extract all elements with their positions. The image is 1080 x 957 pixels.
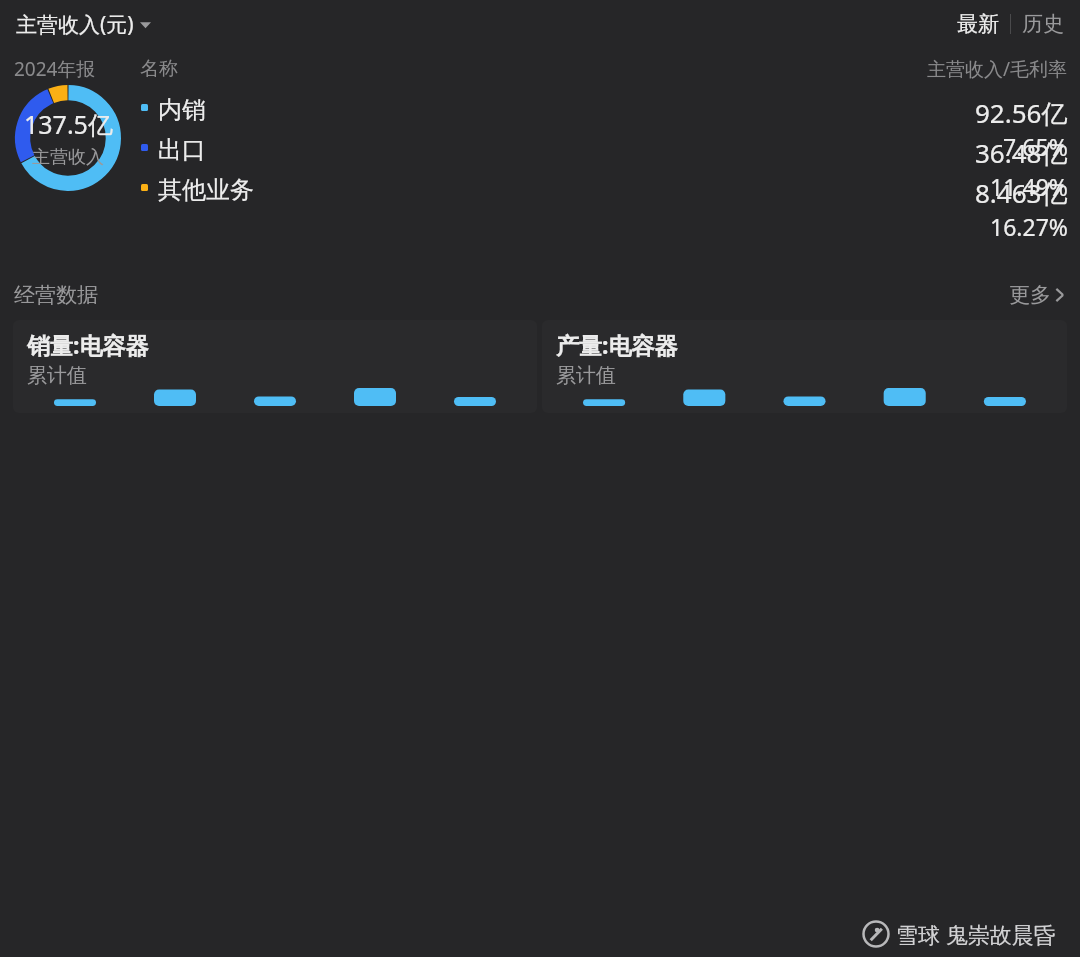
staticText: 主营收入 [32,146,104,169]
button[interactable]: 主营收入(元) [14,8,153,41]
staticText: 16.27% [990,211,1068,242]
button[interactable]: 历史 [1018,7,1068,41]
staticText: 7.65% [1003,131,1068,162]
staticText: 36.48亿 [975,135,1068,171]
staticText: 92.56亿 [975,95,1068,131]
staticText: 11.49% [990,171,1068,202]
button[interactable]: 销量:电容器 [13,320,537,413]
button[interactable]: 出口 [0,133,1080,204]
staticText: 产量:电容器 [556,329,678,360]
staticText: 2024年报 [14,56,96,82]
staticText: 出口 [158,135,206,165]
button[interactable]: 内销 [0,93,1080,164]
staticText: 最新 [957,11,999,37]
staticText: 内销 [158,95,206,125]
staticText: 名称 [140,57,178,81]
button[interactable]: 更多 [1007,278,1066,312]
staticText: 历史 [1022,11,1064,37]
button[interactable]: 最新 [953,7,1003,41]
staticText: 更多 [1009,282,1051,308]
staticText: 销量:电容器 [27,329,149,360]
staticText: 137.5亿 [24,107,113,141]
button[interactable]: 其他业务 [0,173,1080,244]
staticText: 经营数据 [14,282,98,308]
staticText: 主营收入/毛利率 [927,56,1068,82]
staticText: 累计值 [27,363,87,388]
staticText: 主营收入(元) [16,10,134,39]
staticText: 累计值 [556,363,616,388]
staticText: 其他业务 [158,175,254,205]
staticText: 雪球 鬼崇故晨昏 [896,919,1056,949]
staticText: 8.463亿 [975,175,1068,211]
button[interactable]: 产量:电容器 [542,320,1067,413]
